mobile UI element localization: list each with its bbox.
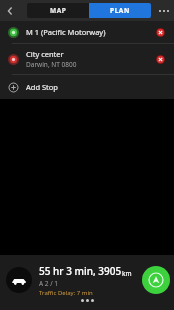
button[interactable]: M 1 (Pacific Motorway) bbox=[0, 21, 174, 43]
staticText: PLAN bbox=[110, 6, 130, 15]
staticText: km bbox=[122, 269, 132, 278]
button[interactable]: More options bbox=[154, 0, 174, 21]
button[interactable]: Expand panel bbox=[77, 295, 98, 306]
button[interactable]: PLAN bbox=[89, 3, 151, 18]
staticText: A 2 / 1 bbox=[39, 279, 59, 288]
button[interactable]: Add Stop bbox=[0, 75, 174, 99]
button[interactable]: City center bbox=[0, 44, 174, 74]
button[interactable]: Remove stop bbox=[152, 51, 168, 67]
staticText: M 1 (Pacific Motorway) bbox=[26, 27, 106, 37]
staticText: Add Stop bbox=[26, 82, 58, 92]
button[interactable]: Start navigation bbox=[142, 266, 170, 294]
staticText: Traffic Delay: 7 min bbox=[39, 289, 93, 297]
staticText: City center bbox=[26, 49, 64, 59]
staticText: MAP bbox=[50, 6, 67, 15]
button[interactable]: Back bbox=[0, 0, 20, 21]
button[interactable]: MAP bbox=[27, 3, 89, 18]
staticText: Darwin, NT 0800 bbox=[26, 60, 77, 69]
button[interactable]: Remove stop bbox=[152, 24, 168, 40]
button[interactable]: 55 hr 3 min, 3905 bbox=[0, 259, 174, 301]
staticText: 55 hr 3 min, 3905 bbox=[39, 264, 122, 278]
